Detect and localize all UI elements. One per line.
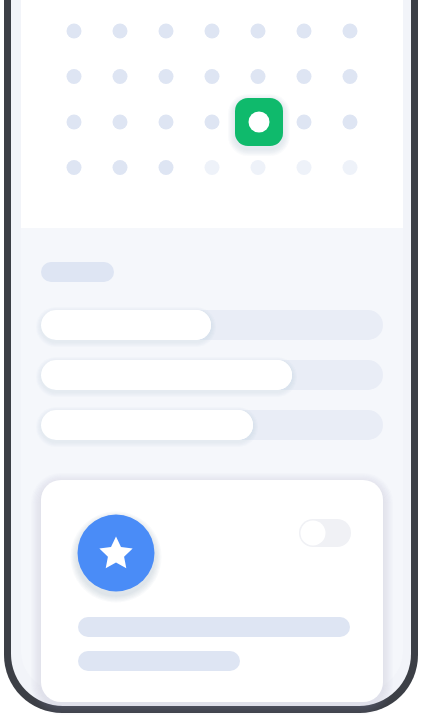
button[interactable]: Favourite: [78, 515, 155, 592]
button[interactable]: Record: [235, 98, 283, 146]
button[interactable]: Contrast slider: [41, 410, 383, 440]
button[interactable]: Toggle: [299, 519, 351, 547]
button[interactable]: [41, 480, 383, 702]
button[interactable]: Volume slider: [41, 360, 383, 390]
button[interactable]: Brightness slider: [41, 310, 383, 340]
